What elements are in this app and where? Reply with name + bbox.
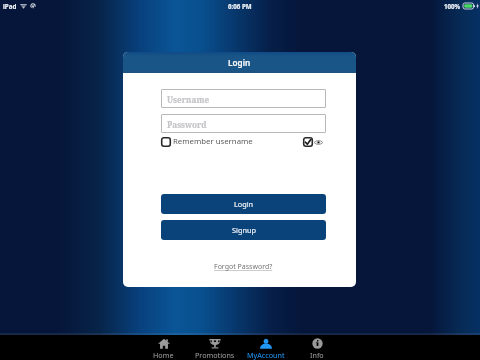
staticText: Forgot Password? [214,262,273,272]
button[interactable]: Show password [303,137,323,147]
staticText: Remember username [173,136,253,147]
staticText: Info [310,350,324,360]
button[interactable]: Password [161,114,326,133]
staticText: Username [167,94,210,105]
button[interactable]: Info [291,335,342,360]
staticText: Login [228,57,251,68]
staticText: iPad [3,2,17,10]
button[interactable]: Signup [161,220,326,240]
staticText: 100% [444,2,461,10]
button[interactable]: Username [161,89,326,108]
staticText: 6:06 PM [228,2,252,10]
staticText: Login [234,199,254,209]
button[interactable]: Home [138,335,189,360]
staticText: Promotions [195,350,235,360]
button[interactable]: Remember username [161,136,253,147]
button[interactable]: Promotions [189,335,240,360]
button[interactable]: MyAccount [240,335,291,360]
button[interactable]: Forgot Password? [214,262,273,272]
staticText: Signup [232,225,256,235]
staticText: Password [167,119,207,130]
button[interactable]: Login [161,194,326,214]
staticText: Home [153,350,174,360]
staticText: MyAccount [247,350,285,360]
